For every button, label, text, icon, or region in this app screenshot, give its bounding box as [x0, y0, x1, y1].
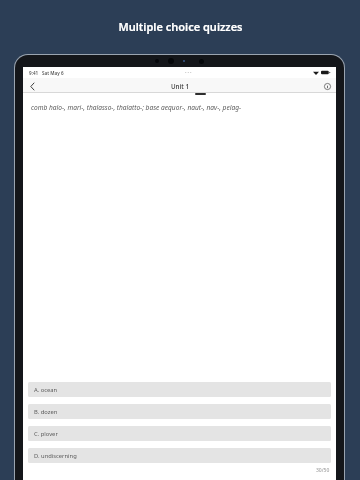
button[interactable]: C. plover	[28, 426, 331, 441]
staticText: comb halo-, mari-, thalasso-, thalatto-;…	[31, 103, 242, 112]
staticText: Unit 1	[171, 82, 189, 90]
button[interactable]: D. undiscerning	[28, 448, 331, 463]
staticText: Multiple choice quizzes	[118, 19, 243, 34]
staticText: C. plover	[34, 430, 58, 438]
staticText: 9:41	[29, 70, 39, 76]
staticText: D. undiscerning	[34, 452, 77, 460]
staticText: Sat May 6	[42, 70, 64, 76]
staticText: • • •	[185, 70, 192, 75]
staticText: A. ocean	[34, 386, 58, 394]
staticText: B. dozen	[34, 408, 58, 416]
button[interactable]: Info	[320, 79, 334, 93]
staticText: 30/50	[316, 467, 330, 474]
button[interactable]: B. dozen	[28, 404, 331, 419]
button[interactable]: A. ocean	[28, 382, 331, 397]
button[interactable]: Back	[25, 79, 39, 93]
